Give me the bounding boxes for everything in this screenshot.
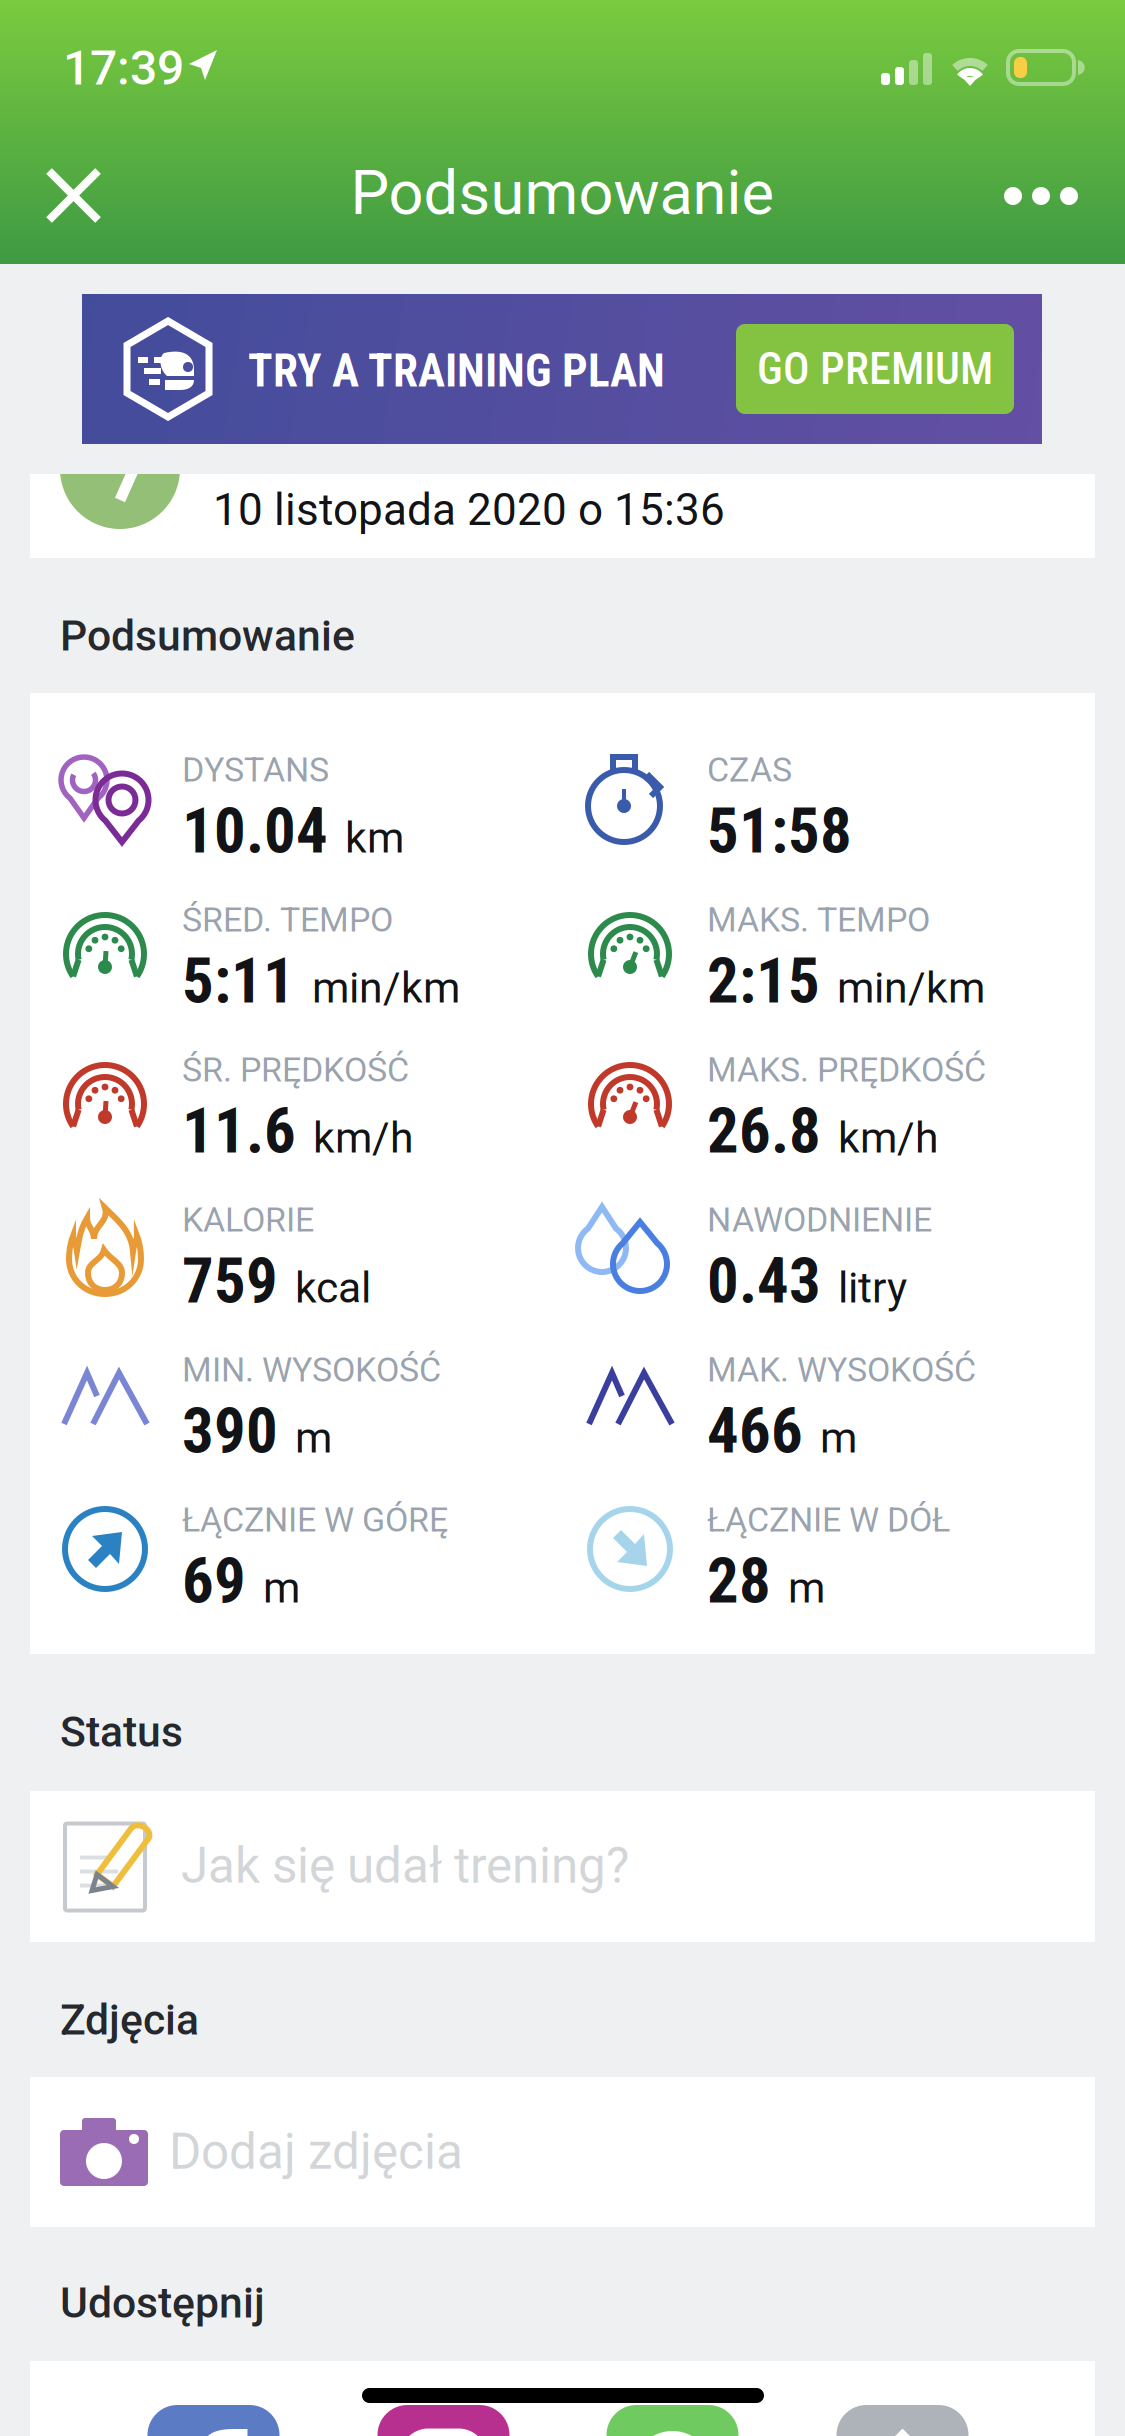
button[interactable]: Dodaj zdjęcia (30, 2077, 1095, 2227)
staticText: Jak się udał trening? (181, 1837, 629, 1895)
staticText: DYSTANS (182, 750, 329, 790)
staticText: MAKS. TEMPO (707, 900, 930, 940)
staticText: 17:39 (63, 40, 184, 96)
staticText: Status (60, 1707, 183, 1757)
staticText: Zdjęcia (60, 1995, 199, 2045)
staticText: ŁĄCZNIE W GÓRĘ (182, 1500, 448, 1540)
staticText: kcal (295, 1263, 371, 1313)
button[interactable]: Udostępnij na Facebooku (147, 2405, 279, 2436)
staticText: 5:11 (182, 944, 295, 1018)
staticText: m (263, 1563, 300, 1613)
staticText: KALORIE (182, 1200, 314, 1240)
staticText: litry (838, 1263, 907, 1313)
staticText: 28 (707, 1544, 771, 1618)
staticText: ŚRED. TEMPO (182, 900, 393, 940)
button[interactable]: TRY A TRAINING PLAN (82, 294, 1042, 444)
staticText: MAK. WYSOKOŚĆ (707, 1350, 976, 1390)
staticText: Dodaj zdjęcia (169, 2123, 463, 2181)
staticText: 390 (182, 1394, 278, 1468)
button[interactable]: Więcej opcji (981, 141, 1101, 251)
staticText: 0.43 (707, 1244, 821, 1318)
staticText: Podsumowanie (60, 611, 355, 661)
staticText: m (820, 1413, 857, 1463)
staticText: 69 (182, 1544, 246, 1618)
button[interactable]: Udostępnij na WhatsApp (606, 2405, 738, 2436)
staticText: km (345, 813, 404, 863)
staticText: 2:15 (707, 944, 820, 1018)
staticText: 11.6 (182, 1094, 296, 1168)
staticText: 466 (707, 1394, 803, 1468)
button[interactable]: Jak się udał trening? (30, 1791, 1095, 1942)
staticText: ŁĄCZNIE W DÓŁ (707, 1500, 950, 1540)
staticText: TRY A TRAINING PLAN (248, 344, 665, 397)
staticText: 10 listopada 2020 o 15:36 (213, 484, 725, 536)
staticText: km/h (838, 1113, 939, 1163)
button[interactable]: Udostępnij na Instagramie (377, 2405, 509, 2436)
staticText: Udostępnij (60, 2278, 265, 2328)
staticText: GO PREMIUM (757, 343, 993, 395)
staticText: m (295, 1413, 332, 1463)
button[interactable]: Zamknij (19, 141, 129, 251)
staticText: 10.04 (182, 794, 328, 868)
staticText: NAWODNIENIE (707, 1200, 932, 1240)
staticText: MIN. WYSOKOŚĆ (182, 1350, 441, 1390)
staticText: 759 (182, 1244, 278, 1318)
staticText: CZAS (707, 750, 792, 790)
staticText: ŚR. PRĘDKOŚĆ (182, 1050, 409, 1090)
staticText: min/km (837, 963, 985, 1013)
staticText: km/h (313, 1113, 414, 1163)
staticText: 51:58 (707, 794, 852, 868)
staticText: min/km (312, 963, 460, 1013)
staticText: m (788, 1563, 825, 1613)
button[interactable]: Więcej opcji udostępniania (836, 2405, 968, 2436)
staticText: Podsumowanie (350, 157, 774, 229)
staticText: MAKS. PRĘDKOŚĆ (707, 1050, 986, 1090)
staticText: 26.8 (707, 1094, 821, 1168)
